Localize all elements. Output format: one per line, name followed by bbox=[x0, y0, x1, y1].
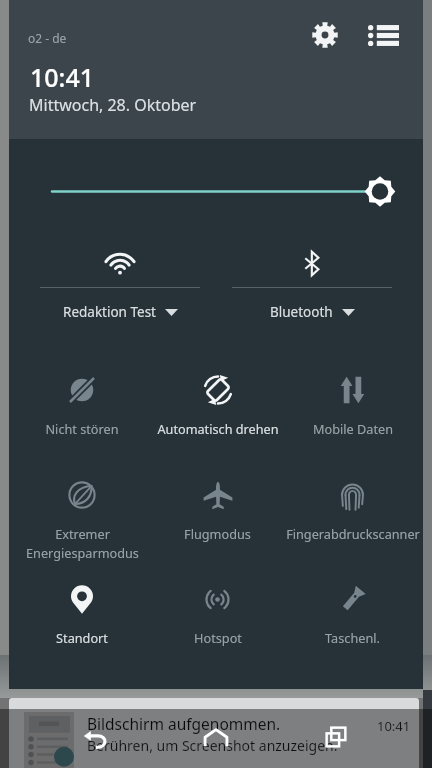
button[interactable]: Standort bbox=[14, 583, 150, 673]
staticText: Bildschirm aufgenommen. bbox=[87, 713, 281, 734]
button[interactable]: Bildschirm aufgenommen. bbox=[9, 698, 419, 768]
staticText: 10:41 bbox=[30, 60, 95, 94]
button[interactable]: Bluetooth bbox=[216, 240, 408, 340]
staticText: o2 - de bbox=[28, 30, 67, 46]
staticText: Standort bbox=[56, 629, 108, 646]
button[interactable]: Redaktion Test bbox=[24, 240, 216, 340]
button[interactable]: Back bbox=[68, 711, 124, 767]
button[interactable]: Flugmodus bbox=[150, 479, 285, 569]
staticText: Nicht stören bbox=[45, 420, 119, 437]
button[interactable]: Hotspot bbox=[150, 583, 285, 673]
staticText: Hotspot bbox=[194, 629, 242, 646]
staticText: Automatisch drehen bbox=[157, 420, 279, 437]
button[interactable]: Fingerabdruckscanner bbox=[285, 479, 420, 569]
staticText: Mittwoch, 28. Oktober bbox=[29, 94, 197, 116]
staticText: Berühren, um Screenshot anzuzeigen. bbox=[87, 736, 338, 755]
button[interactable]: Mobile Daten bbox=[285, 374, 420, 464]
button[interactable]: Home bbox=[188, 710, 244, 766]
button[interactable]: Settings bbox=[303, 13, 347, 57]
button[interactable]: Edit tiles bbox=[362, 13, 406, 57]
staticText: Redaktion Test bbox=[63, 303, 156, 321]
staticText: Fingerabdruckscanner bbox=[286, 525, 420, 542]
staticText: Mobile Daten bbox=[313, 420, 393, 437]
button[interactable]: Taschenl. bbox=[285, 583, 420, 673]
button[interactable]: Automatisch drehen bbox=[150, 374, 285, 464]
button[interactable]: Nicht stören bbox=[14, 374, 150, 464]
staticText: 10:41 bbox=[377, 717, 411, 735]
staticText: Extremer Energiesparmodus bbox=[26, 525, 139, 562]
button[interactable]: Brightness bbox=[9, 169, 423, 214]
button[interactable]: Extremer Energiesparmodus bbox=[14, 479, 150, 569]
button[interactable]: Recent apps bbox=[308, 709, 364, 765]
staticText: Taschenl. bbox=[325, 629, 380, 646]
staticText: Flugmodus bbox=[184, 525, 251, 542]
staticText: Bluetooth bbox=[270, 303, 333, 321]
